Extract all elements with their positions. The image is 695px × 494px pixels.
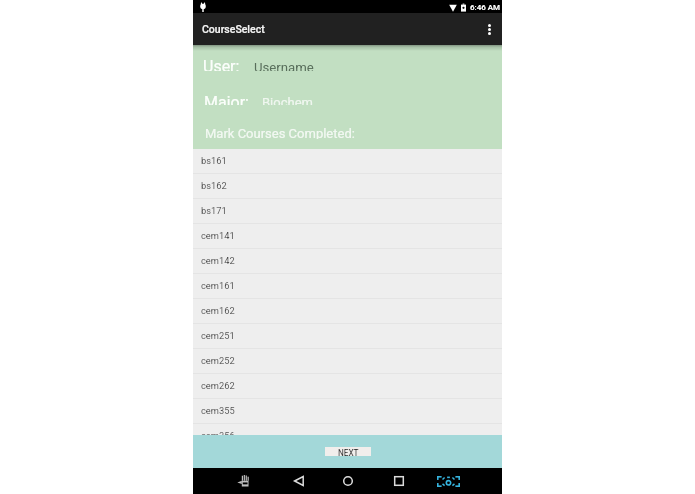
button[interactable]: Accessibility	[236, 473, 253, 487]
button[interactable]: NEXT	[325, 447, 371, 456]
staticText: cem141	[201, 230, 235, 241]
button[interactable]: Screenshot	[434, 472, 460, 488]
button[interactable]: Home	[340, 473, 356, 489]
button[interactable]: bs162	[193, 173, 502, 198]
staticText: cem355	[201, 405, 235, 416]
button[interactable]: cem142	[193, 248, 502, 273]
staticText: 6:46 AM	[470, 3, 501, 12]
button[interactable]: cem251	[193, 323, 502, 348]
staticText: cem161	[201, 280, 235, 291]
button[interactable]: bs171	[193, 198, 502, 223]
staticText: cem356	[201, 430, 235, 435]
button[interactable]: cem141	[193, 223, 502, 248]
button[interactable]: cem252	[193, 348, 502, 373]
staticText: Major:	[204, 93, 249, 105]
staticText: bs161	[201, 155, 227, 166]
staticText: cem262	[201, 380, 235, 391]
button[interactable]: cem355	[193, 398, 502, 423]
staticText: Username	[254, 60, 314, 71]
staticText: CourseSelect	[202, 23, 265, 35]
staticText: NEXT	[338, 448, 359, 456]
staticText: cem251	[201, 330, 235, 341]
staticText: bs162	[201, 180, 227, 191]
button[interactable]: cem262	[193, 373, 502, 398]
staticText: Biochem	[262, 95, 313, 105]
staticText: Mark Courses Completed:	[205, 126, 355, 139]
staticText: bs171	[201, 205, 227, 216]
button[interactable]: Recent apps	[391, 473, 407, 489]
button[interactable]: cem161	[193, 273, 502, 298]
staticText: cem142	[201, 255, 235, 266]
button[interactable]: More options	[476, 13, 502, 45]
staticText: cem162	[201, 305, 235, 316]
staticText: User:	[203, 57, 240, 71]
staticText: cem252	[201, 355, 235, 366]
button[interactable]: cem356	[193, 423, 502, 435]
button[interactable]: cem162	[193, 298, 502, 323]
button[interactable]: bs161	[193, 149, 502, 173]
button[interactable]: Back	[291, 473, 307, 489]
